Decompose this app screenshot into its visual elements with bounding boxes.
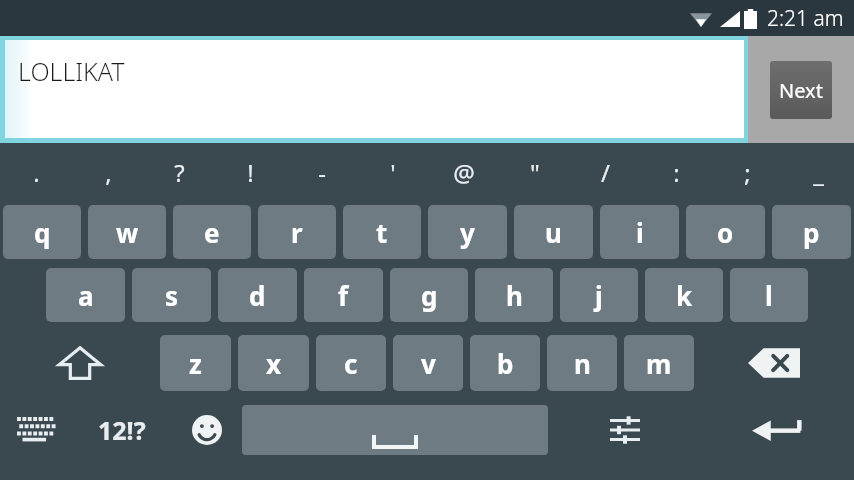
staticText: 12!? — [98, 413, 146, 447]
staticText: b — [497, 346, 514, 381]
button[interactable]: @ — [428, 143, 499, 201]
button[interactable]: ; — [712, 143, 783, 201]
button[interactable]: o — [686, 205, 765, 259]
button[interactable]: p — [772, 205, 851, 259]
button[interactable]: n — [547, 335, 617, 391]
button[interactable]: v — [393, 335, 463, 391]
button[interactable]: Backspace — [694, 335, 854, 391]
button[interactable]: y — [428, 205, 507, 259]
staticText: v — [421, 346, 436, 381]
button[interactable]: f — [304, 268, 383, 322]
button[interactable]: b — [470, 335, 540, 391]
staticText: n — [574, 346, 591, 381]
staticText: a — [78, 278, 94, 313]
button[interactable]: / — [570, 143, 641, 201]
staticText: r — [291, 215, 303, 250]
button[interactable]: c — [316, 335, 386, 391]
button[interactable]: " — [499, 143, 570, 201]
button[interactable]: Enter — [701, 402, 854, 458]
staticText: l — [765, 278, 773, 313]
staticText: " — [530, 156, 540, 189]
button[interactable]: Space — [242, 405, 548, 455]
button[interactable]: s — [132, 268, 211, 322]
button[interactable]: h — [475, 268, 553, 322]
button[interactable]: ' — [357, 143, 428, 201]
button[interactable]: - — [286, 143, 357, 201]
button[interactable]: Switch keyboard — [0, 402, 72, 458]
button[interactable]: e — [173, 205, 251, 259]
button[interactable]: q — [3, 205, 81, 259]
button[interactable]: x — [238, 335, 309, 391]
staticText: u — [545, 215, 562, 250]
button[interactable]: a — [46, 268, 125, 322]
staticText: ! — [247, 156, 254, 189]
button[interactable]: l — [730, 268, 808, 322]
button[interactable]: z — [160, 335, 231, 391]
staticText: / — [601, 156, 610, 189]
staticText: @ — [453, 156, 475, 189]
staticText: - — [318, 156, 326, 189]
staticText: , — [105, 156, 112, 189]
staticText: w — [116, 215, 139, 250]
button[interactable]: LOLLIKAT — [5, 40, 744, 138]
button[interactable]: _ — [783, 143, 854, 201]
button[interactable]: Next — [770, 61, 832, 119]
staticText: k — [676, 278, 693, 313]
button[interactable]: g — [390, 268, 468, 322]
button[interactable]: j — [560, 268, 638, 322]
staticText: p — [803, 215, 820, 250]
staticText: ' — [390, 156, 396, 189]
staticText: x — [266, 346, 282, 381]
staticText: ? — [174, 156, 185, 189]
button[interactable]: : — [641, 143, 712, 201]
staticText: j — [595, 278, 603, 313]
staticText: h — [506, 278, 523, 313]
button[interactable]: , — [72, 143, 144, 201]
staticText: ; — [744, 156, 751, 189]
button[interactable]: ! — [215, 143, 286, 201]
staticText: t — [376, 215, 388, 250]
staticText: o — [717, 215, 734, 250]
button[interactable]: d — [218, 268, 297, 322]
button[interactable]: . — [0, 143, 72, 201]
staticText: y — [460, 215, 475, 250]
staticText: 2:21 am — [767, 4, 844, 33]
staticText: Next — [779, 77, 823, 104]
button[interactable]: i — [600, 205, 679, 259]
staticText: c — [344, 346, 358, 381]
button[interactable]: Shift — [0, 335, 160, 391]
staticText: s — [165, 278, 179, 313]
staticText: g — [421, 278, 438, 313]
button[interactable]: u — [514, 205, 593, 259]
button[interactable]: r — [258, 205, 336, 259]
button[interactable]: k — [645, 268, 723, 322]
staticText: d — [249, 278, 266, 313]
button[interactable]: Emoji — [172, 402, 242, 458]
staticText: : — [673, 156, 680, 189]
staticText: i — [636, 215, 644, 250]
button[interactable]: t — [343, 205, 421, 259]
staticText: . — [33, 156, 40, 189]
button[interactable]: w — [88, 205, 166, 259]
button[interactable]: Settings — [548, 402, 701, 458]
staticText: f — [338, 278, 349, 313]
staticText: q — [34, 215, 51, 250]
staticText: e — [204, 215, 220, 250]
button[interactable]: m — [624, 335, 694, 391]
staticText: z — [189, 346, 202, 381]
button[interactable]: ? — [144, 143, 215, 201]
staticText: _ — [813, 156, 824, 189]
staticText: LOLLIKAT — [18, 54, 125, 88]
button[interactable]: 12!? — [72, 402, 172, 458]
staticText: m — [646, 346, 672, 381]
